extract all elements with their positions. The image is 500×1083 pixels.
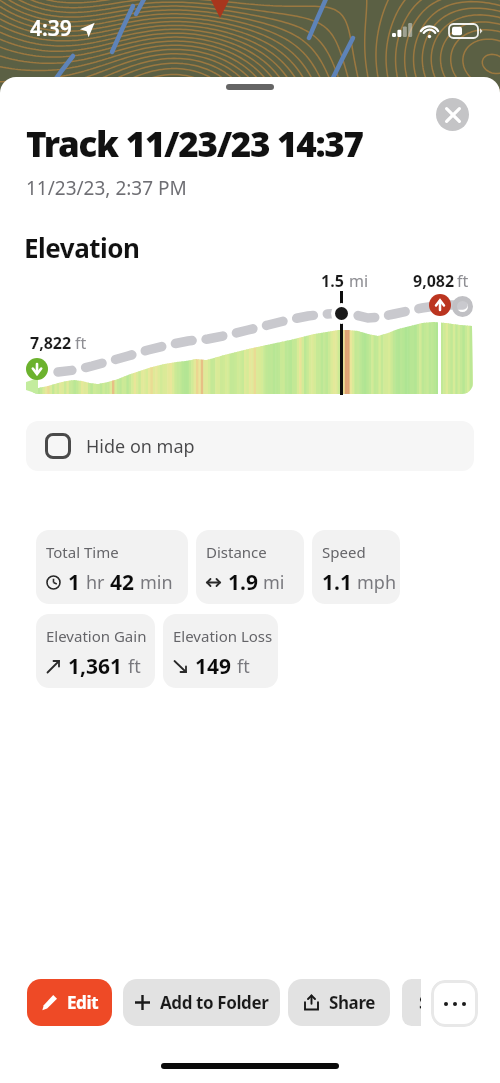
staticText: 11/23/23, 2:37 PM — [26, 175, 187, 201]
staticText: 9,082 — [413, 270, 455, 292]
staticText: Distance — [206, 542, 267, 562]
staticText: Elevation — [24, 230, 140, 265]
button[interactable]: More options — [431, 980, 478, 1027]
staticText: Total Time — [46, 542, 119, 562]
staticText: ft — [237, 654, 250, 679]
button[interactable]: Close — [436, 98, 469, 131]
staticText: 7,822 — [30, 332, 72, 354]
staticText: mi — [349, 270, 369, 292]
staticText: hr — [86, 570, 105, 595]
staticText: mi — [263, 570, 285, 595]
staticText: 1 — [68, 568, 81, 597]
staticText: mph — [357, 570, 397, 595]
staticText: Elevation Loss — [173, 626, 273, 646]
button[interactable]: Total Time — [36, 530, 188, 604]
staticText: ft — [75, 332, 87, 354]
staticText: Edit — [67, 991, 99, 1014]
staticText: 1.5 — [321, 270, 344, 292]
staticText: 1,361 — [68, 652, 123, 681]
button[interactable]: Hide on map — [26, 421, 474, 471]
button[interactable]: Distance — [196, 530, 304, 604]
button[interactable]: Edit — [27, 979, 112, 1026]
staticText: Elevation Gain — [46, 626, 147, 646]
staticText: Share — [329, 991, 376, 1014]
staticText: 1.1 — [322, 568, 352, 597]
staticText: ft — [457, 270, 469, 292]
staticText: 42 — [110, 568, 135, 597]
staticText: Hide on map — [86, 434, 195, 459]
button[interactable]: Speed — [312, 530, 400, 604]
button[interactable]: Share — [288, 979, 390, 1026]
staticText: Speed — [322, 542, 366, 562]
staticText: Track 11/23/23 14:37 — [26, 120, 363, 168]
staticText: 4:39 — [30, 14, 72, 43]
staticText: S — [419, 991, 421, 1014]
staticText: 1.9 — [228, 568, 258, 597]
staticText: min — [140, 570, 173, 595]
button[interactable]: Elevation Gain — [36, 614, 155, 688]
staticText: Add to Folder — [160, 991, 269, 1014]
button[interactable]: Add to Folder — [123, 979, 280, 1026]
staticText: ft — [128, 654, 141, 679]
button[interactable]: Elevation Loss — [163, 614, 278, 688]
staticText: 149 — [195, 652, 232, 681]
